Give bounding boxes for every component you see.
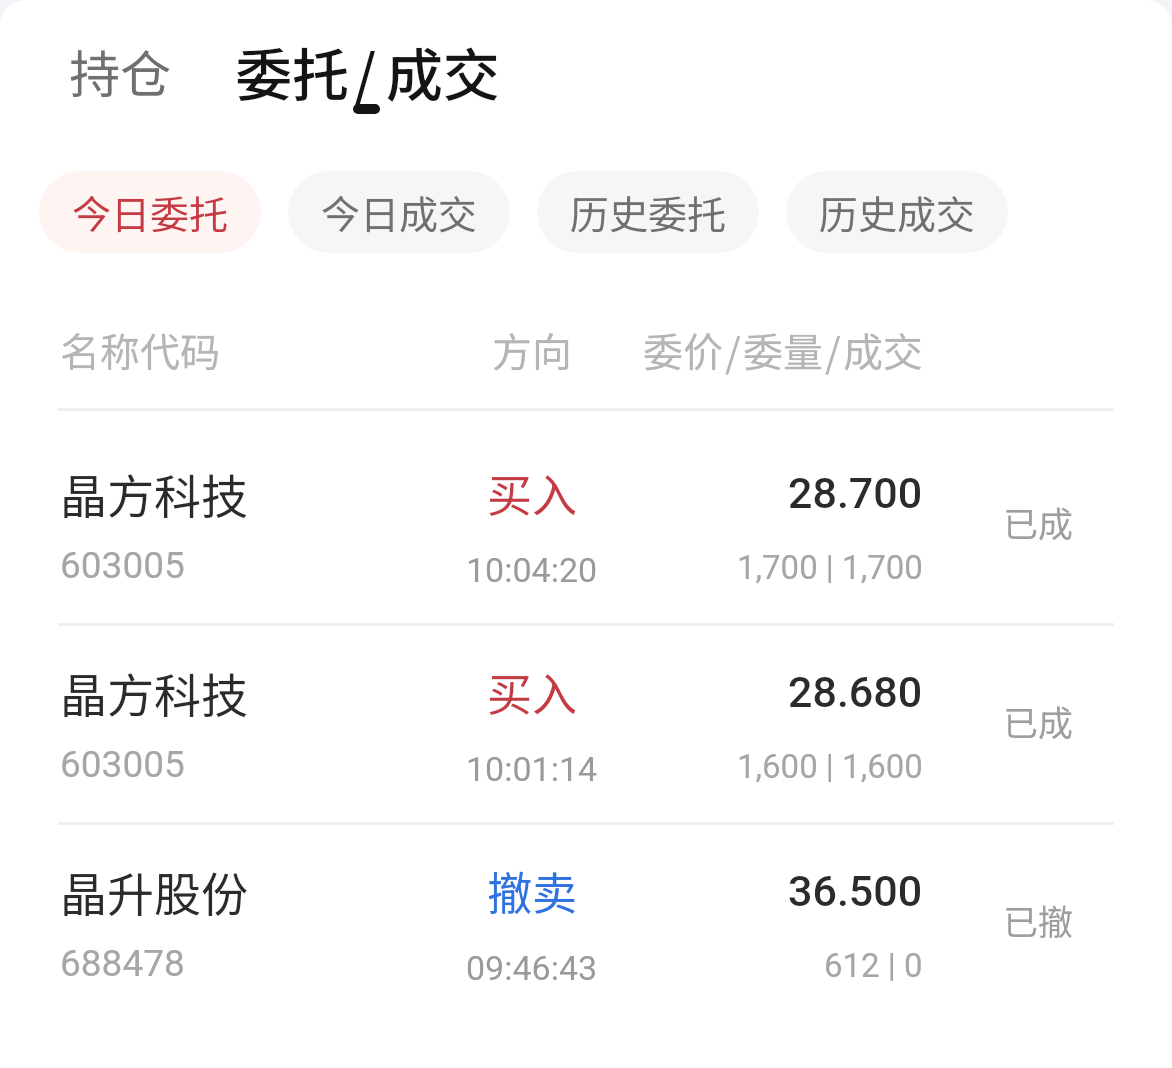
button[interactable]: 历史委托 bbox=[537, 171, 759, 253]
staticText: 今日成交 bbox=[321, 184, 478, 240]
staticText: 名称代码 bbox=[60, 321, 432, 379]
staticText: 36.500 bbox=[788, 866, 923, 916]
staticText: 买入 bbox=[487, 659, 578, 724]
staticText: 603005 bbox=[60, 544, 185, 587]
staticText: 持仓 bbox=[69, 34, 172, 108]
staticText: 已成 bbox=[1003, 496, 1074, 547]
staticText: 603005 bbox=[60, 743, 185, 786]
staticText: 今日委托 bbox=[72, 184, 229, 240]
staticText: 1,600 | 1,600 bbox=[737, 747, 923, 786]
staticText: 09:46:43 bbox=[466, 948, 598, 988]
staticText: 委价 bbox=[643, 321, 723, 379]
staticText: 28.700 bbox=[788, 468, 923, 518]
staticText: 已成 bbox=[1003, 695, 1074, 746]
staticText: 10:01:14 bbox=[466, 749, 598, 789]
staticText: 612 | 0 bbox=[824, 946, 923, 985]
button[interactable]: 今日成交 bbox=[288, 171, 510, 253]
button[interactable]: 晶升股份 bbox=[0, 857, 1172, 1024]
staticText: 方向 bbox=[492, 321, 572, 379]
staticText: 晶方科技 bbox=[60, 459, 248, 527]
staticText: 晶方科技 bbox=[60, 658, 248, 726]
staticText: 委量 bbox=[743, 321, 823, 379]
staticText: 成交 bbox=[843, 321, 923, 379]
button[interactable]: 委托 bbox=[235, 0, 500, 113]
staticText: 1,700 | 1,700 bbox=[737, 548, 923, 587]
staticText: 成交 bbox=[386, 30, 500, 113]
staticText: 10:04:20 bbox=[466, 550, 598, 590]
button[interactable]: 晶方科技 bbox=[0, 658, 1172, 825]
staticText: / bbox=[725, 321, 741, 379]
button[interactable]: 今日委托 bbox=[39, 171, 261, 253]
staticText: / bbox=[354, 30, 377, 113]
button[interactable]: 持仓 bbox=[69, 0, 172, 108]
button[interactable]: 晶方科技 bbox=[0, 459, 1172, 626]
staticText: 历史委托 bbox=[570, 184, 727, 240]
button[interactable]: 历史成交 bbox=[786, 171, 1008, 253]
staticText: 委托 bbox=[235, 30, 349, 113]
staticText: 历史成交 bbox=[819, 184, 976, 240]
staticText: 买入 bbox=[487, 460, 578, 525]
staticText: 晶升股份 bbox=[60, 857, 248, 925]
staticText: 撤卖 bbox=[487, 858, 578, 923]
staticText: 已撤 bbox=[1003, 894, 1074, 945]
staticText: / bbox=[825, 321, 841, 379]
staticText: 688478 bbox=[60, 942, 185, 985]
staticText: 28.680 bbox=[788, 667, 923, 717]
